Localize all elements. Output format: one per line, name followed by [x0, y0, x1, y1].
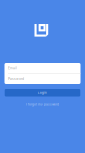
staticText: Email — [8, 66, 17, 70]
staticText: Password — [8, 77, 24, 81]
staticText: Login — [38, 91, 47, 94]
button[interactable]: Login — [5, 89, 80, 96]
button[interactable]: I forgot my password — [0, 101, 85, 107]
staticText: I forgot my password — [26, 103, 59, 106]
